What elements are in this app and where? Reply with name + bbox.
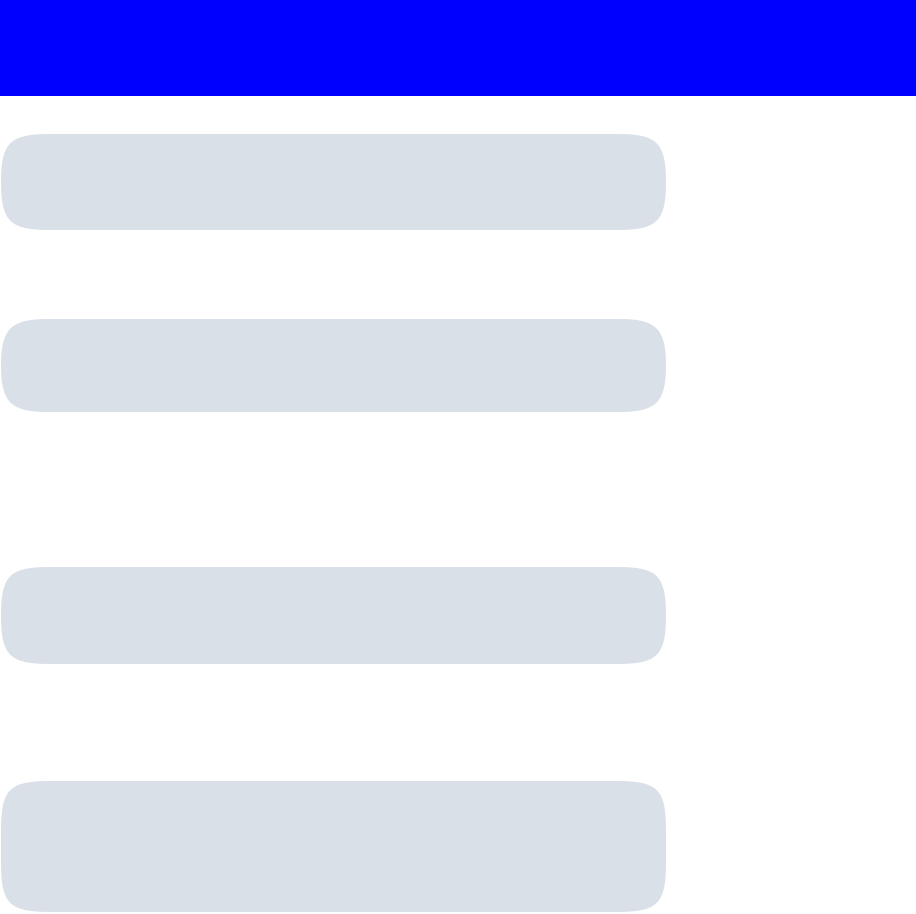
button[interactable]: Item 3: [1, 567, 666, 664]
button[interactable]: Item 2: [1, 319, 666, 412]
button[interactable]: Item 1: [1, 134, 666, 230]
button[interactable]: Item 4: [1, 781, 666, 912]
